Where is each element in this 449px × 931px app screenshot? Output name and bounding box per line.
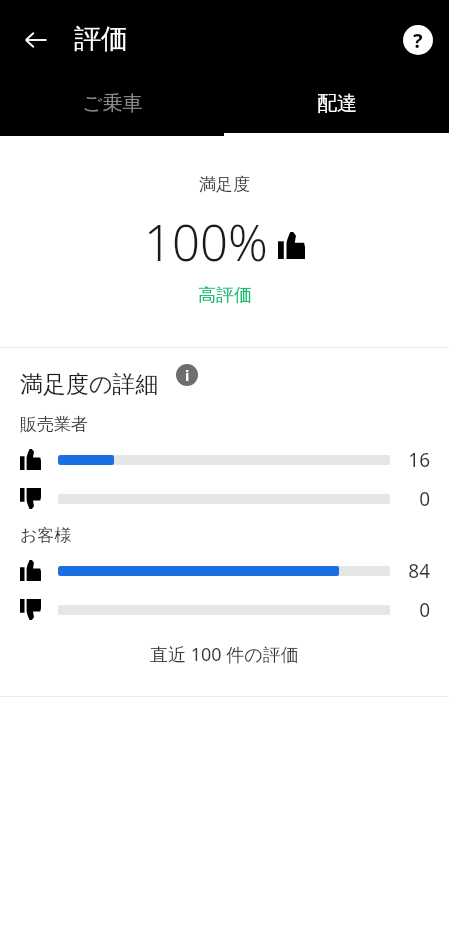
staticText: 満足度の詳細: [20, 370, 159, 399]
staticText: i: [185, 366, 190, 385]
button[interactable]: Info: [171, 359, 203, 391]
button[interactable]: ご乗車: [0, 81, 224, 136]
staticText: 満足度: [199, 174, 250, 195]
staticText: 100%: [144, 209, 268, 276]
staticText: お客様: [20, 525, 72, 546]
staticText: 直近 100 件の評価: [150, 642, 299, 667]
staticText: 高評価: [198, 284, 252, 307]
staticText: 販売業者: [20, 414, 88, 435]
button[interactable]: Back: [16, 20, 56, 60]
staticText: 16: [398, 447, 430, 473]
staticText: 評価: [74, 22, 128, 56]
button[interactable]: 配達: [224, 81, 449, 136]
staticText: ?: [413, 27, 423, 54]
staticText: ご乗車: [82, 91, 143, 116]
staticText: 0: [398, 597, 430, 623]
staticText: 84: [398, 558, 430, 584]
staticText: 0: [398, 486, 430, 512]
button[interactable]: Help: [398, 20, 438, 60]
staticText: 配達: [317, 91, 357, 116]
